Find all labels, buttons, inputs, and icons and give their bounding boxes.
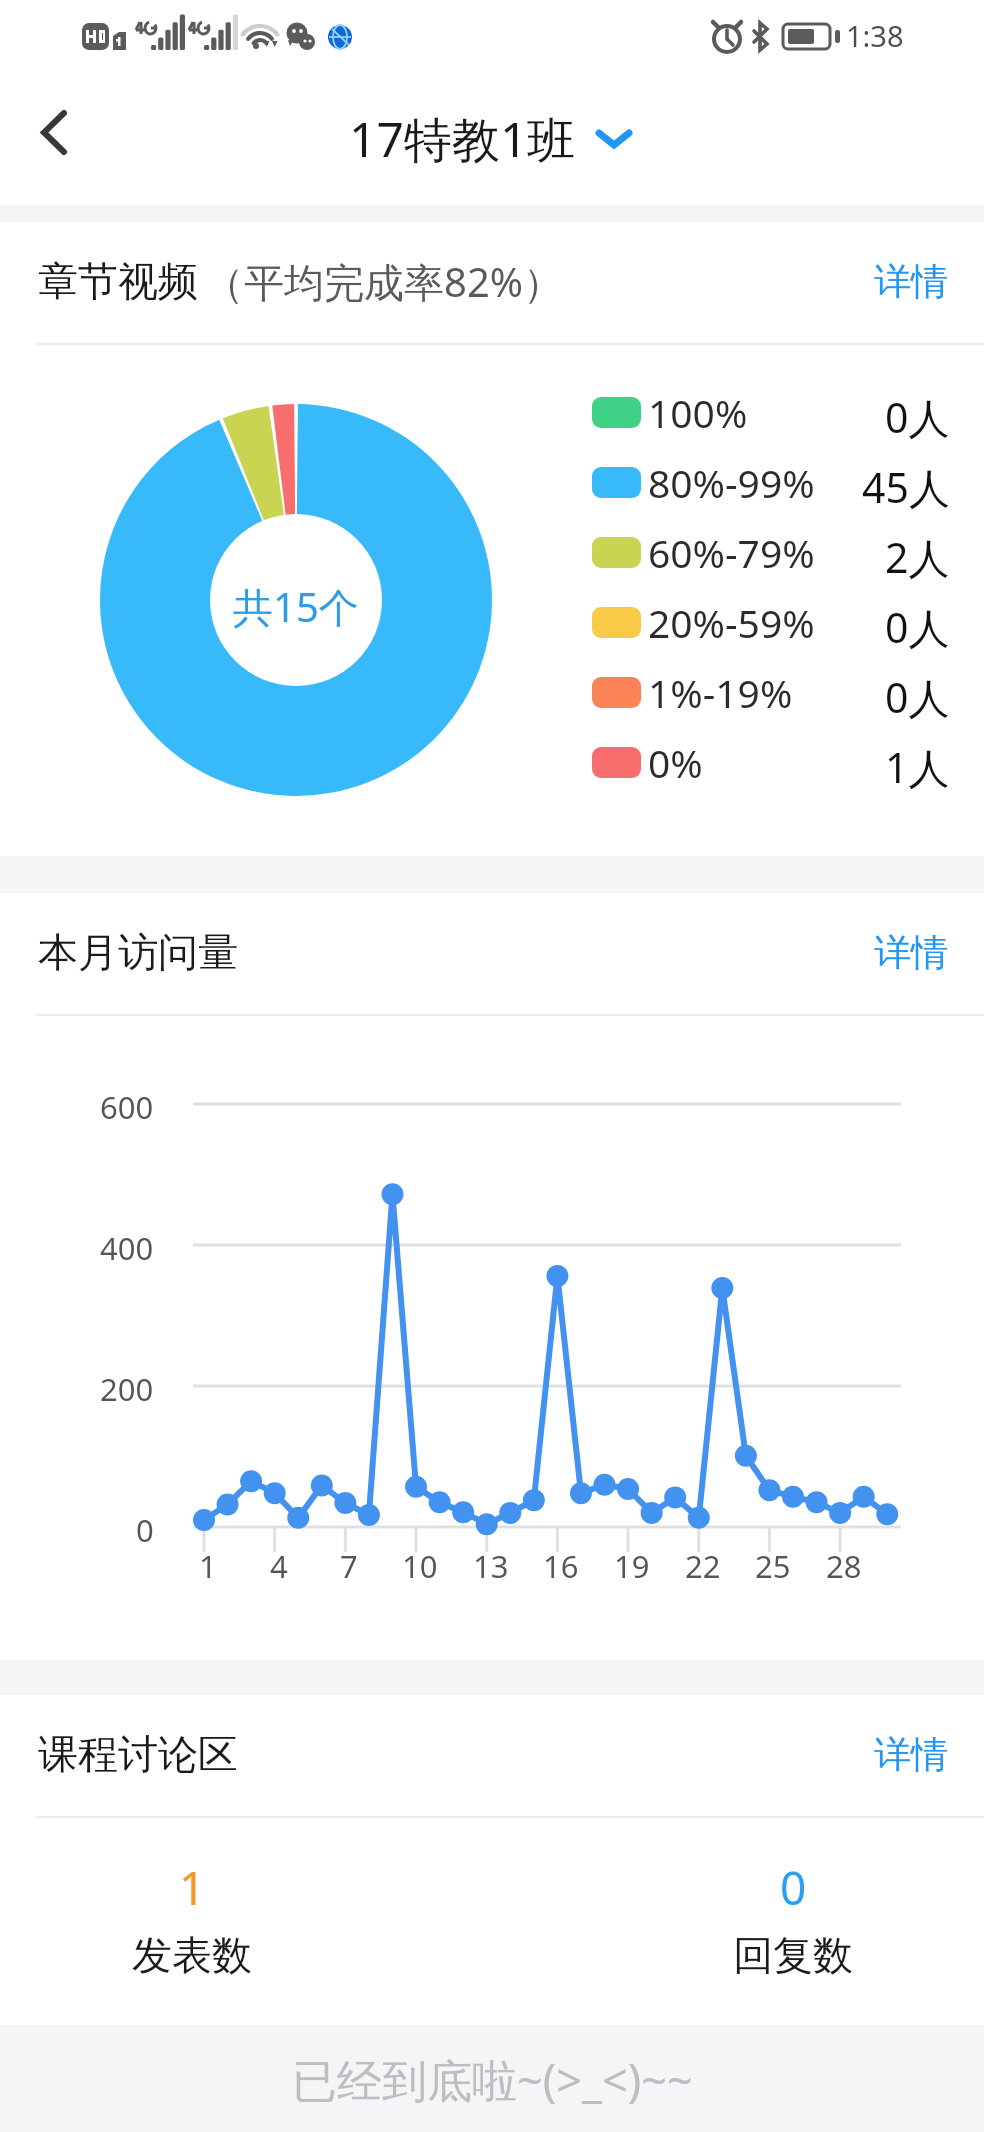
staticText: 已经到底啦~(>_<)~~ <box>292 2049 693 2110</box>
staticText: 详情 <box>874 1731 948 1778</box>
staticText: 20%-59% <box>648 596 815 649</box>
staticText: 回复数 <box>733 1930 853 1980</box>
button[interactable]: 17特教1班 <box>349 106 636 172</box>
staticText: 0人 <box>885 669 950 725</box>
button[interactable]: Back <box>0 92 110 205</box>
staticText: 200 <box>100 1368 154 1410</box>
staticText: 22 <box>685 1545 721 1587</box>
staticText: 400 <box>100 1227 154 1269</box>
staticText: 17特教1班 <box>349 106 576 172</box>
staticText: 课程讨论区 <box>38 1729 238 1779</box>
staticText: 详情 <box>874 258 948 305</box>
staticText: 7 <box>340 1545 358 1587</box>
staticText: 4 <box>270 1545 288 1587</box>
button[interactable]: 详情 <box>844 919 948 986</box>
button[interactable]: 详情 <box>844 1721 948 1788</box>
staticText: 80%-99% <box>648 456 815 509</box>
staticText: 1人 <box>885 739 950 795</box>
staticText: 1 <box>179 1856 206 1919</box>
staticText: 0人 <box>885 599 950 655</box>
staticText: 45人 <box>862 459 950 515</box>
staticText: 0 <box>136 1509 154 1551</box>
staticText: 0 <box>780 1856 807 1919</box>
staticText: 共15个 <box>233 579 359 634</box>
staticText: 1%-19% <box>648 666 793 719</box>
staticText: 本月访问量 <box>38 927 238 977</box>
staticText: 2人 <box>885 529 950 585</box>
staticText: 0% <box>648 736 703 789</box>
staticText: 10 <box>402 1545 438 1587</box>
staticText: 19 <box>614 1545 650 1587</box>
staticText: 25 <box>755 1545 791 1587</box>
button[interactable]: 0 <box>633 1856 953 1980</box>
staticText: （平均完成率82%） <box>204 254 563 309</box>
staticText: 28 <box>826 1545 862 1587</box>
staticText: 0人 <box>885 389 950 445</box>
staticText: 1 <box>199 1545 217 1587</box>
staticText: 发表数 <box>132 1930 252 1980</box>
staticText: 60%-79% <box>648 526 815 579</box>
staticText: 13 <box>473 1545 509 1587</box>
staticText: 详情 <box>874 929 948 976</box>
staticText: 章节视频 <box>38 256 198 306</box>
button[interactable]: 详情 <box>844 248 948 315</box>
staticText: 16 <box>543 1545 579 1587</box>
staticText: 1:38 <box>846 16 904 55</box>
staticText: 600 <box>100 1086 154 1128</box>
staticText: 100% <box>648 386 748 439</box>
button[interactable]: 1 <box>32 1856 352 1980</box>
